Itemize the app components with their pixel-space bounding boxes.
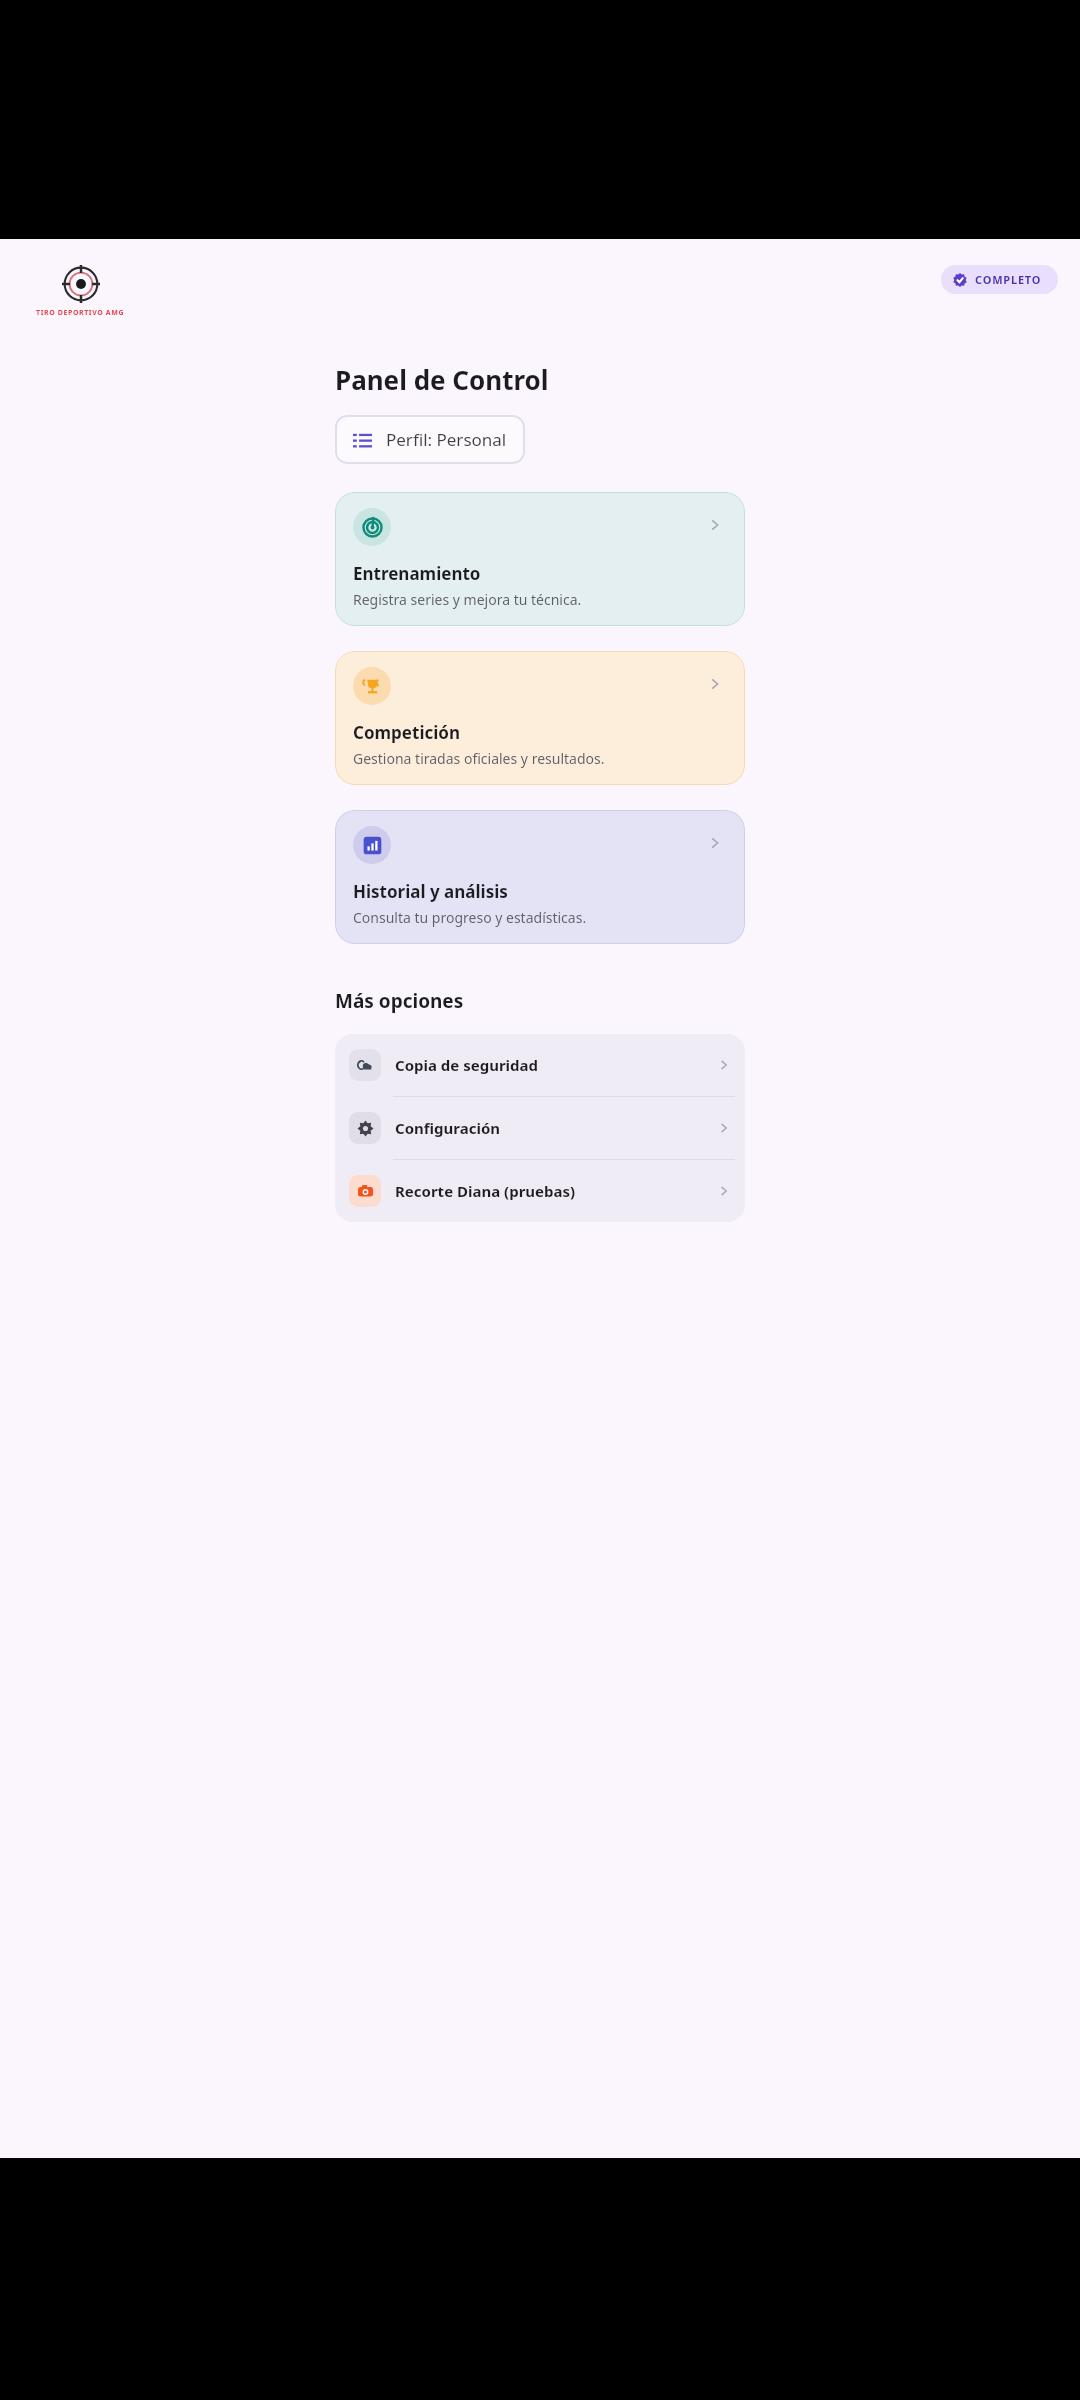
staticText: Recorte Diana (pruebas): [395, 1181, 576, 1201]
staticText: Historial y análisis: [353, 880, 508, 903]
staticText: Copia de seguridad: [395, 1055, 539, 1075]
other: Abrir: [717, 1121, 731, 1135]
button[interactable]: Copia de seguridad: [335, 1034, 745, 1096]
staticText: COMPLETO: [975, 272, 1042, 287]
button[interactable]: Entrenamiento: [335, 492, 745, 626]
other: Abrir: [707, 835, 723, 851]
staticText: Registra series y mejora tu técnica.: [353, 590, 582, 609]
other: Abrir: [707, 676, 723, 692]
staticText: Entrenamiento: [353, 562, 481, 585]
staticText: Gestiona tiradas oficiales y resultados.: [353, 749, 605, 768]
staticText: Competición: [353, 721, 460, 744]
button[interactable]: Recorte Diana (pruebas): [335, 1160, 745, 1222]
staticText: Más opciones: [335, 988, 464, 1014]
button[interactable]: Historial y análisis: [335, 810, 745, 944]
staticText: Consulta tu progreso y estadísticas.: [353, 908, 587, 927]
button[interactable]: Configuración: [335, 1097, 745, 1159]
staticText: Panel de Control: [335, 362, 549, 397]
other: Abrir: [707, 517, 723, 533]
other: Abrir: [717, 1058, 731, 1072]
other: Abrir: [717, 1184, 731, 1198]
staticText: TIRO DEPORTIVO AMG: [36, 308, 125, 318]
button[interactable]: Competición: [335, 651, 745, 785]
button[interactable]: Perfil: Personal: [335, 415, 525, 464]
button[interactable]: COMPLETO: [941, 265, 1058, 294]
staticText: Perfil: Personal: [386, 428, 507, 451]
staticText: Configuración: [395, 1118, 501, 1138]
